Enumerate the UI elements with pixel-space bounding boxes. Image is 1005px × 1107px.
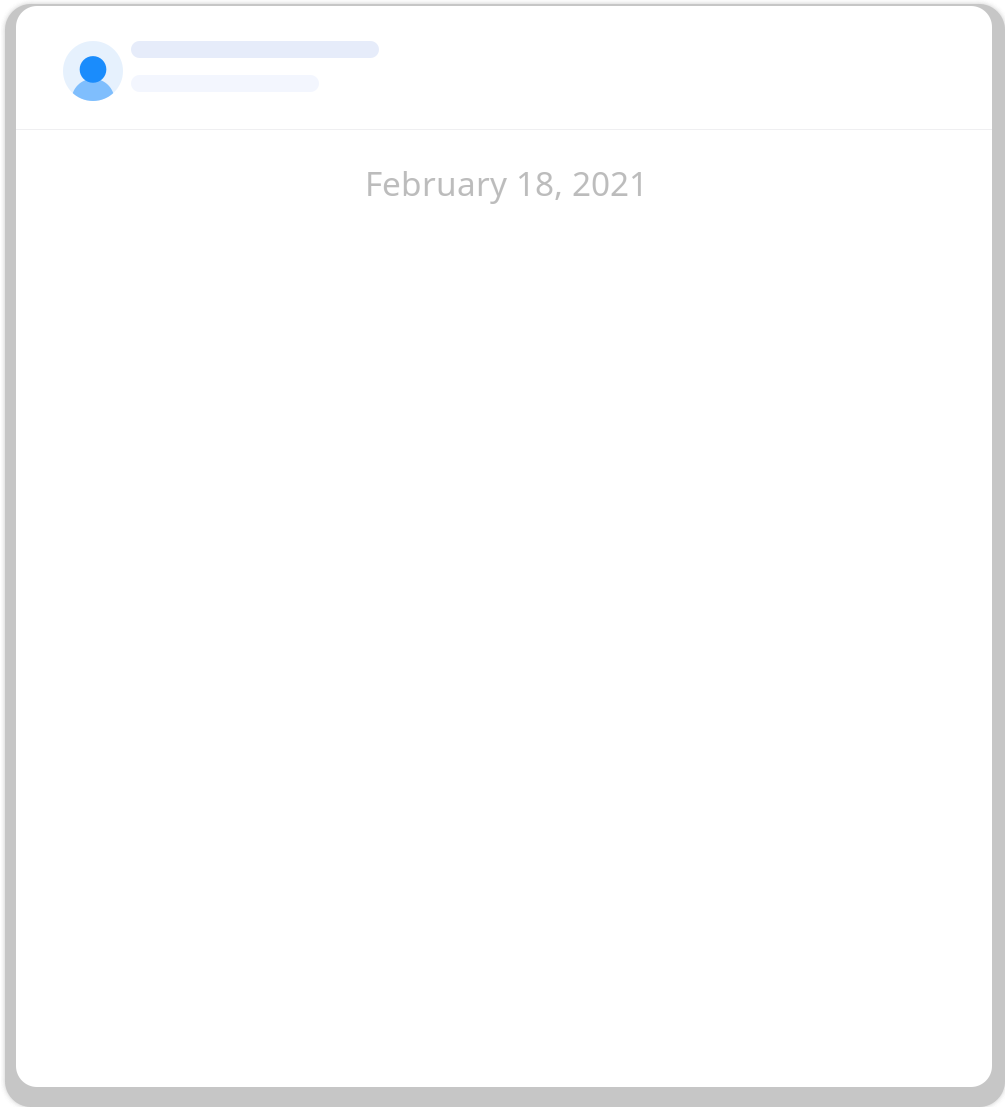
staticText: February 18, 2021: [365, 161, 648, 205]
button[interactable]: Conversation participant: [16, 6, 992, 129]
